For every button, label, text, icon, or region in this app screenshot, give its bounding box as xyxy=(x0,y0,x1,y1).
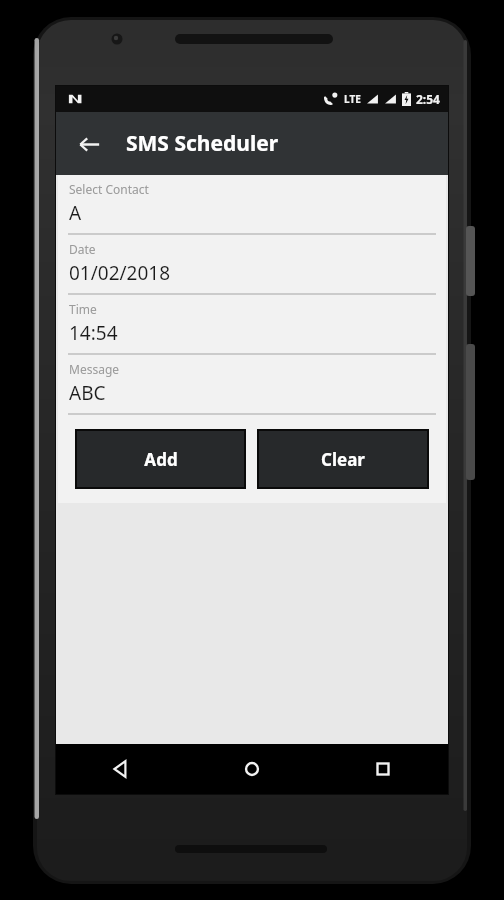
button[interactable]: Message xyxy=(58,355,446,413)
button[interactable]: Time xyxy=(58,295,446,353)
button[interactable]: Back xyxy=(56,744,186,794)
staticText: Select Contact xyxy=(69,181,149,197)
staticText: ABC xyxy=(69,380,106,406)
button[interactable]: Home xyxy=(186,744,317,794)
staticText: Date xyxy=(69,241,96,257)
staticText: SMS Scheduler xyxy=(126,129,279,158)
staticText: 2:54 xyxy=(416,91,440,107)
staticText: 01/02/2018 xyxy=(69,260,171,286)
button[interactable]: Add xyxy=(77,431,244,487)
button[interactable]: Clear xyxy=(259,431,427,487)
staticText: A xyxy=(69,200,82,226)
staticText: Add xyxy=(144,448,178,471)
button[interactable]: Date xyxy=(58,235,446,293)
button[interactable]: Select Contact xyxy=(58,175,446,233)
staticText: Time xyxy=(69,301,97,317)
staticText: Message xyxy=(69,361,120,377)
staticText: 14:54 xyxy=(69,320,118,346)
button[interactable]: Recent apps xyxy=(317,744,448,794)
staticText: Clear xyxy=(321,448,365,471)
staticText: LTE xyxy=(344,92,361,106)
button[interactable]: Back xyxy=(66,121,112,167)
